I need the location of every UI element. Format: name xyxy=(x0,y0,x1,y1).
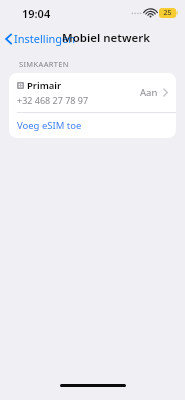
other: Cellular signal xyxy=(131,9,142,17)
staticText: 19:04 xyxy=(22,6,51,21)
staticText: Voeg eSIM toe xyxy=(17,119,82,132)
button[interactable]: Primair xyxy=(9,73,176,112)
staticText: 25 xyxy=(163,8,172,18)
staticText: Primair xyxy=(27,79,62,92)
staticText: Mobiel netwerk xyxy=(62,30,150,46)
staticText: Aan xyxy=(140,86,158,99)
staticText: Instellingen xyxy=(14,31,76,46)
other: Battery 25 percent xyxy=(159,8,178,18)
button[interactable]: Voeg eSIM toe xyxy=(9,113,176,138)
staticText: SIMKAARTEN xyxy=(19,59,69,69)
staticText: +32 468 27 78 97 xyxy=(17,94,89,106)
button[interactable]: Instellingen xyxy=(0,28,80,49)
other: Wi-Fi xyxy=(145,9,156,18)
